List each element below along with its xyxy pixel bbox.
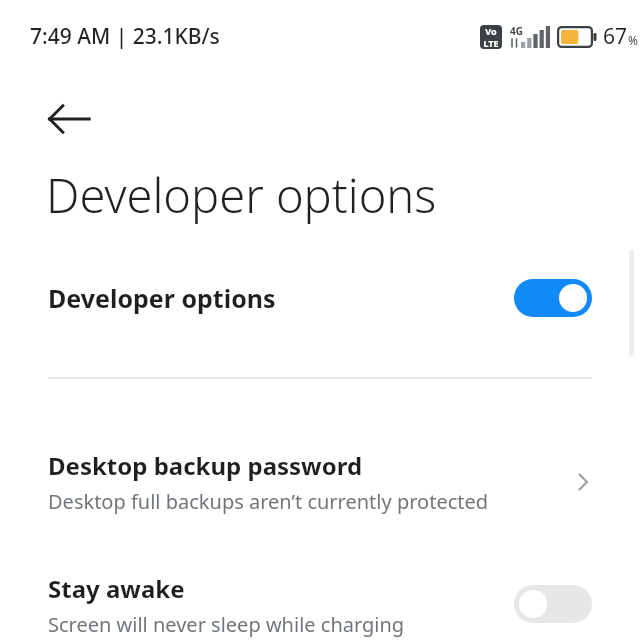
button[interactable]: Developer options — [0, 262, 640, 334]
staticText: Desktop full backups aren’t currently pr… — [48, 488, 489, 515]
staticText: Screen will never sleep while charging — [48, 611, 405, 638]
button[interactable]: Developer options toggle, on — [514, 279, 592, 317]
staticText: Vo — [485, 25, 497, 37]
staticText: 67 — [603, 22, 628, 51]
button[interactable]: Stay awake — [0, 556, 640, 640]
button[interactable]: Back — [34, 84, 104, 154]
staticText: % — [628, 32, 638, 48]
staticText: Developer options — [48, 281, 276, 315]
staticText: 4G — [510, 24, 523, 38]
button[interactable]: Stay awake toggle, off — [514, 585, 592, 623]
button[interactable]: Desktop backup password — [0, 430, 640, 534]
staticText: LTE — [483, 37, 499, 49]
staticText: Stay awake — [48, 572, 185, 605]
staticText: Developer options — [46, 163, 437, 227]
staticText: 7:49 AM | 23.1KB/s — [30, 22, 220, 51]
staticText: Desktop backup password — [48, 449, 363, 482]
